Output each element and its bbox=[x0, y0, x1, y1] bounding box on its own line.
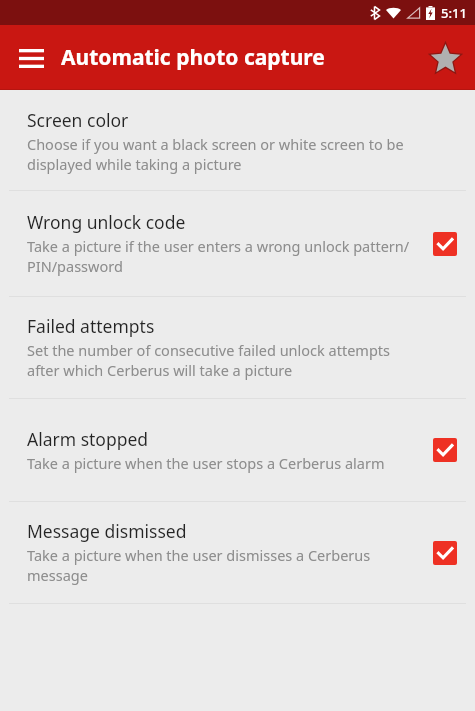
staticText: Set the number of consecutive failed unl… bbox=[27, 340, 419, 381]
button[interactable]: Toggle setting bbox=[433, 232, 457, 256]
button[interactable]: Message dismissed bbox=[0, 502, 475, 603]
staticText: Screen color bbox=[27, 108, 129, 132]
staticText: 5:11 bbox=[441, 4, 467, 22]
button[interactable]: Toggle setting bbox=[433, 438, 457, 462]
staticText: Message dismissed bbox=[27, 519, 187, 543]
staticText: Failed attempts bbox=[27, 314, 155, 338]
button[interactable]: Wrong unlock code bbox=[0, 191, 475, 296]
staticText: Take a picture if the user enters a wron… bbox=[27, 236, 419, 277]
button[interactable]: Toggle setting bbox=[433, 541, 457, 565]
staticText: Take a picture when the user stops a Cer… bbox=[27, 453, 385, 473]
button[interactable]: Favorite bbox=[422, 35, 468, 81]
staticText: Automatic photo capture bbox=[61, 43, 422, 72]
staticText: Wrong unlock code bbox=[27, 210, 186, 234]
staticText: Choose if you want a black screen or whi… bbox=[27, 134, 419, 175]
button[interactable]: Failed attempts bbox=[0, 297, 475, 398]
staticText: Alarm stopped bbox=[27, 427, 149, 451]
button[interactable]: Open navigation drawer bbox=[7, 34, 55, 82]
staticText: Take a picture when the user dismisses a… bbox=[27, 545, 419, 586]
button[interactable]: Screen color bbox=[0, 92, 475, 190]
button[interactable]: Alarm stopped bbox=[0, 399, 475, 501]
